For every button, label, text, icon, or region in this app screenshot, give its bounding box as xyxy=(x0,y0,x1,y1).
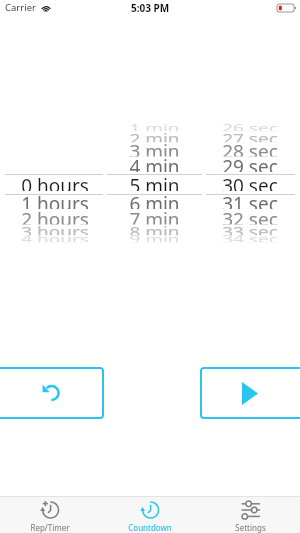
button[interactable]: 26 sec xyxy=(200,0,300,300)
button[interactable]: Settings xyxy=(200,497,300,533)
button[interactable]: 0 hours xyxy=(0,0,100,300)
staticText: 5 min xyxy=(129,173,180,191)
staticText: 27 sec xyxy=(222,128,278,142)
staticText: Carrier xyxy=(5,1,36,14)
staticText: 0 hours xyxy=(21,173,89,191)
staticText: 4 min xyxy=(129,154,180,172)
staticText: 7 min xyxy=(129,207,180,224)
staticText: 31 sec xyxy=(222,191,278,209)
staticText: 30 sec xyxy=(222,173,278,191)
staticText: 9 min xyxy=(129,232,180,242)
staticText: 34 sec xyxy=(222,232,278,242)
button[interactable]: Rep/Timer xyxy=(0,497,100,533)
staticText: 4 hours xyxy=(21,232,89,242)
button[interactable]: Reset xyxy=(0,367,104,419)
staticText: 28 sec xyxy=(222,139,278,156)
staticText: 3 hours xyxy=(21,221,89,235)
staticText: 26 sec xyxy=(222,121,278,131)
staticText: 2 hours xyxy=(21,207,89,224)
button[interactable]: 1 min xyxy=(100,0,200,300)
staticText: 29 sec xyxy=(222,154,278,172)
staticText: Settings xyxy=(235,522,266,533)
staticText: Countdown xyxy=(128,522,172,533)
staticText: 3 min xyxy=(129,139,180,156)
staticText: 32 sec xyxy=(222,207,278,224)
staticText: 1 min xyxy=(129,121,180,131)
staticText: Rep/Timer xyxy=(30,522,70,533)
staticText: 1 hours xyxy=(21,191,89,209)
staticText: 2 min xyxy=(129,128,180,142)
button[interactable]: Start xyxy=(200,367,300,419)
staticText: 8 min xyxy=(129,221,180,235)
staticText: 33 sec xyxy=(222,221,278,235)
button[interactable]: Countdown xyxy=(100,497,200,533)
staticText: 6 min xyxy=(129,191,180,209)
staticText: 5:03 PM xyxy=(131,1,170,15)
